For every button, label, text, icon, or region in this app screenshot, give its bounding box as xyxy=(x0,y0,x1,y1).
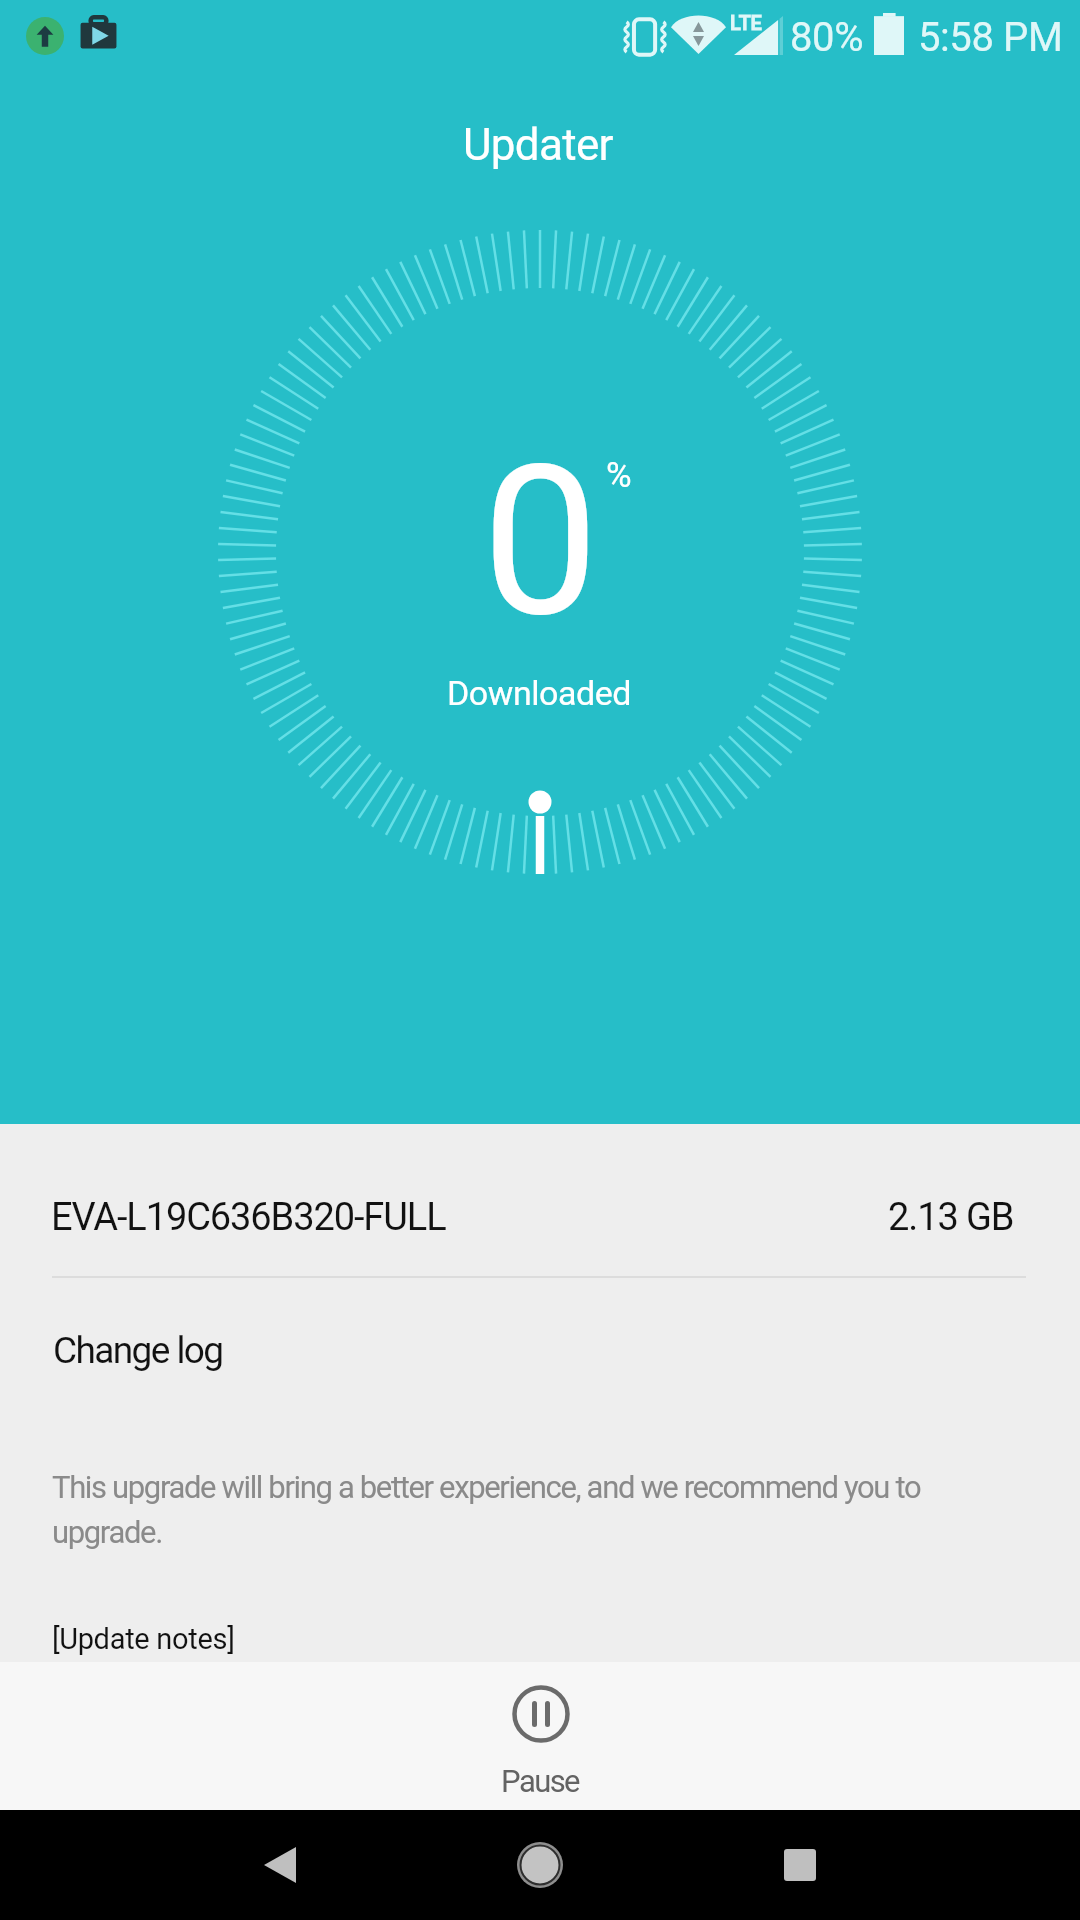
staticText: Downloaded xyxy=(447,673,632,713)
staticText: % xyxy=(606,455,632,496)
button[interactable]: Pause download xyxy=(0,1662,1080,1810)
staticText: Pause xyxy=(0,1763,1080,1799)
button[interactable]: Home xyxy=(492,1817,588,1913)
button[interactable]: Back xyxy=(232,1817,328,1913)
staticText: [Update notes] xyxy=(52,1622,235,1656)
staticText: 5:58 PM xyxy=(918,14,1063,61)
button[interactable]: Recent apps xyxy=(752,1817,848,1913)
staticText: This upgrade will bring a better experie… xyxy=(52,1469,1052,1551)
staticText: Updater xyxy=(463,119,613,171)
staticText: 80% xyxy=(790,14,864,61)
staticText: Change log xyxy=(53,1329,223,1372)
staticText: 0 xyxy=(482,420,599,664)
staticText: 2.13 GB xyxy=(888,1195,1014,1240)
staticText: LTE xyxy=(730,11,762,34)
staticText: EVA-L19C636B320-FULL xyxy=(51,1195,446,1240)
